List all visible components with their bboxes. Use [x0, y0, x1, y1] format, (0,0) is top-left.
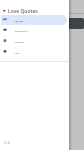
staticText: Love Quotes — [8, 8, 38, 15]
staticText: Bookmarks — [15, 29, 28, 32]
button[interactable]: Info — [1, 47, 67, 57]
button[interactable]: Settings — [1, 36, 67, 46]
staticText: Settings — [15, 40, 25, 43]
staticText: v1.0 — [4, 141, 10, 145]
staticText: Quotes — [15, 19, 24, 22]
button[interactable]: Bookmarks — [1, 25, 67, 35]
staticText: Info — [15, 51, 20, 54]
button[interactable]: Quotes — [1, 15, 67, 25]
